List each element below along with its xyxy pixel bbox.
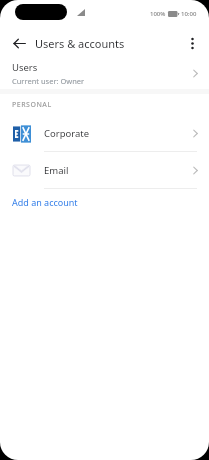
- staticText: Corporate: [44, 127, 90, 140]
- button[interactable]: Add an account: [0, 189, 209, 215]
- button[interactable]: Corporate: [0, 115, 209, 151]
- staticText: Current user: Owner: [12, 76, 85, 86]
- staticText: Users & accounts: [35, 36, 125, 51]
- button[interactable]: Back: [8, 32, 30, 54]
- staticText: PERSONAL: [12, 100, 52, 110]
- button[interactable]: More options: [181, 32, 203, 54]
- staticText: 100%: [150, 10, 166, 18]
- button[interactable]: Email: [0, 152, 209, 188]
- staticText: Email: [44, 164, 69, 177]
- staticText: 10:00: [181, 10, 197, 18]
- button[interactable]: Users: [0, 58, 209, 89]
- staticText: Users: [12, 61, 38, 74]
- staticText: Add an account: [12, 196, 78, 208]
